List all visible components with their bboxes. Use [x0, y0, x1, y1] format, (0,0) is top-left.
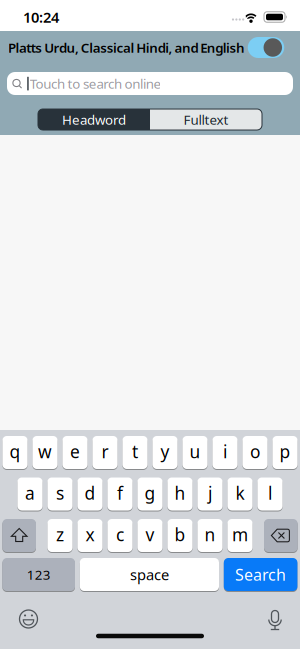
button[interactable]: v [137, 518, 163, 552]
staticText: q [9, 440, 20, 463]
button[interactable]: b [167, 518, 193, 552]
button[interactable]: a [17, 477, 43, 511]
staticText: p [279, 440, 290, 463]
staticText: Touch to search online [30, 75, 161, 92]
button[interactable]: m [227, 518, 253, 552]
button[interactable]: p [272, 435, 298, 469]
staticText: Headword [62, 111, 126, 128]
button[interactable]: i [212, 435, 238, 469]
button[interactable]: Fulltext [150, 109, 262, 130]
staticText: z [56, 523, 64, 546]
button[interactable]: Search [224, 557, 297, 591]
staticText: x [85, 523, 94, 546]
staticText: u [189, 440, 200, 463]
button[interactable]: k [227, 477, 253, 511]
staticText: c [116, 523, 124, 546]
staticText: r [101, 440, 108, 463]
button[interactable]: j [197, 477, 223, 511]
button[interactable]: z [47, 518, 73, 552]
button[interactable]: Touch to search online [7, 72, 293, 95]
button[interactable]: Headword [38, 109, 150, 130]
staticText: i [223, 440, 227, 463]
staticText: g [144, 481, 155, 504]
button[interactable]: Emoji [19, 609, 38, 629]
staticText: d [84, 481, 95, 504]
staticText: Platts Urdu, Classical Hindi, and Englis… [8, 39, 245, 56]
button[interactable]: q [2, 435, 28, 469]
button[interactable]: space [80, 557, 219, 591]
button[interactable]: o [242, 435, 268, 469]
button[interactable]: d [77, 477, 103, 511]
staticText: k [235, 481, 244, 504]
button[interactable]: Shift [2, 518, 36, 552]
button[interactable]: h [167, 477, 193, 511]
button[interactable]: g [137, 477, 163, 511]
staticText: t [132, 440, 138, 463]
button[interactable]: Dictation [267, 609, 283, 630]
button[interactable]: c [107, 518, 133, 552]
button[interactable]: Platts Urdu, Classical Hindi, and Englis… [248, 37, 284, 58]
staticText: b [174, 523, 185, 546]
staticText: Fulltext [183, 111, 228, 128]
button[interactable]: l [257, 477, 283, 511]
staticText: m [232, 523, 248, 546]
staticText: f [117, 481, 123, 504]
button[interactable]: f [107, 477, 133, 511]
staticText: j [208, 481, 212, 504]
button[interactable]: t [122, 435, 148, 469]
staticText: space [130, 565, 169, 584]
button[interactable]: x [77, 518, 103, 552]
staticText: o [250, 440, 260, 463]
staticText: Search [235, 564, 286, 585]
staticText: n [204, 523, 215, 546]
button[interactable]: u [182, 435, 208, 469]
button[interactable]: Delete [264, 518, 298, 552]
button[interactable]: e [62, 435, 88, 469]
staticText: 123 [27, 566, 51, 583]
button[interactable]: n [197, 518, 223, 552]
staticText: v [145, 523, 154, 546]
button[interactable]: w [32, 435, 58, 469]
staticText: a [25, 481, 35, 504]
staticText: 10:24 [23, 7, 59, 27]
staticText: y [160, 440, 169, 463]
staticText: s [56, 481, 64, 504]
button[interactable]: y [152, 435, 178, 469]
staticText: l [268, 481, 272, 504]
button[interactable]: r [92, 435, 118, 469]
staticText: w [38, 440, 52, 463]
button[interactable]: 123 [2, 557, 75, 591]
staticText: e [70, 440, 80, 463]
button[interactable]: s [47, 477, 73, 511]
staticText: h [174, 481, 185, 504]
